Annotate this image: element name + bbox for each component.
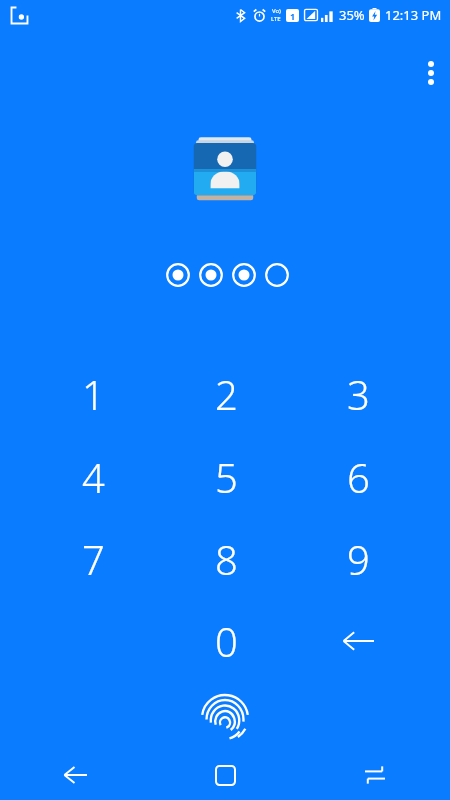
- button[interactable]: 8: [182, 527, 270, 591]
- staticText: Vo): [272, 7, 281, 15]
- staticText: 8: [215, 532, 238, 586]
- button[interactable]: 0: [182, 609, 270, 673]
- staticText: 7: [82, 532, 105, 586]
- button[interactable]: Home: [150, 750, 300, 800]
- staticText: 12:13 PM: [385, 6, 442, 24]
- button[interactable]: Fingerprint: [196, 686, 254, 744]
- button[interactable]: Recent apps: [300, 750, 450, 800]
- staticText: LTE: [271, 15, 281, 23]
- staticText: 4: [82, 450, 105, 504]
- button[interactable]: 9: [314, 527, 402, 591]
- staticText: 5: [215, 450, 238, 504]
- button[interactable]: 4: [49, 445, 137, 509]
- staticText: 35%: [339, 6, 365, 24]
- button[interactable]: 7: [49, 527, 137, 591]
- staticText: 6: [347, 450, 370, 504]
- button[interactable]: More options: [412, 54, 450, 92]
- staticText: 0: [215, 614, 238, 668]
- button[interactable]: Back: [0, 750, 150, 800]
- button[interactable]: Backspace: [318, 613, 398, 669]
- button[interactable]: 1: [49, 362, 137, 426]
- button[interactable]: 5: [182, 445, 270, 509]
- staticText: 2: [215, 367, 238, 421]
- staticText: 3: [347, 367, 370, 421]
- staticText: 1: [82, 367, 105, 421]
- button[interactable]: 2: [182, 362, 270, 426]
- button[interactable]: 6: [314, 445, 402, 509]
- staticText: 9: [347, 532, 370, 586]
- staticText: 1: [290, 10, 296, 22]
- button[interactable]: 3: [314, 362, 402, 426]
